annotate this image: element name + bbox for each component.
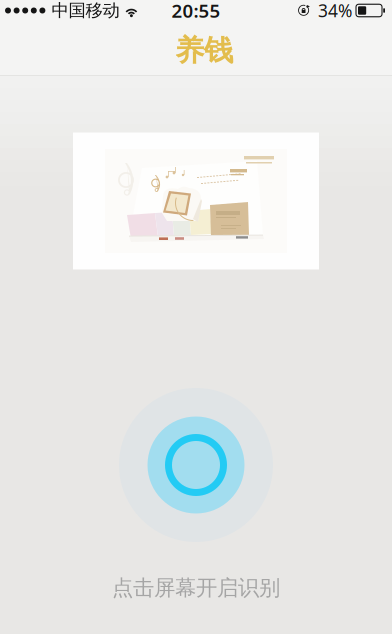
staticText: 20:55 bbox=[171, 0, 220, 23]
button[interactable]: 养钱 bbox=[0, 21, 392, 76]
staticText: 34% bbox=[318, 0, 352, 22]
staticText: 点击屏幕开启识别 bbox=[112, 575, 280, 601]
staticText: 中国移动 bbox=[51, 0, 119, 21]
staticText: 养钱 bbox=[175, 32, 233, 68]
button[interactable]: Start recognition bbox=[119, 388, 273, 542]
